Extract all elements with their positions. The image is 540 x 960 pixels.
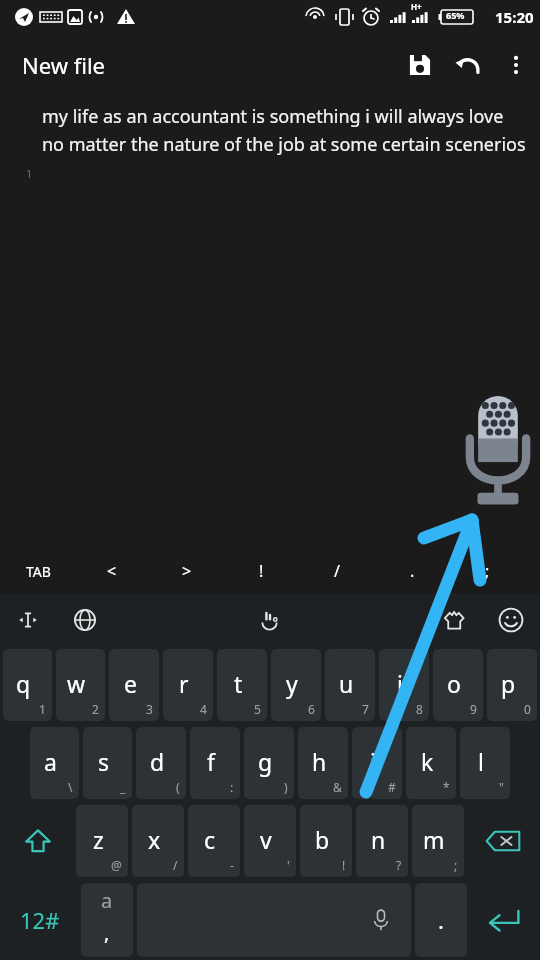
staticText: v [260,824,272,855]
button[interactable]: l [460,727,510,799]
button[interactable]: More options [492,41,540,89]
button[interactable]: m [412,805,464,877]
staticText: h [312,746,327,777]
staticText: 1 [39,701,46,717]
staticText: : [230,779,234,795]
staticText: ; [485,560,490,582]
staticText: New file [22,50,106,80]
staticText: . [438,905,444,935]
staticText: my life as an accountant is something i … [42,104,528,156]
staticText: g [258,746,273,777]
staticText: ! [342,857,346,873]
staticText: . [410,560,415,582]
staticText: \ [68,779,73,795]
button[interactable]: b [300,805,352,877]
staticText: " [499,779,504,795]
button[interactable]: 12# [1,883,79,957]
button[interactable]: o [433,649,483,721]
staticText: f [207,746,215,777]
button[interactable]: q [3,649,52,721]
staticText: 3 [146,701,153,717]
button[interactable]: v [244,805,296,877]
staticText: 9 [470,701,477,717]
button[interactable]: s [83,727,132,799]
button[interactable]: Save [396,41,444,89]
staticText: i [397,668,403,699]
staticText: w [67,668,86,699]
staticText: ' [287,857,290,873]
button[interactable]: i [379,649,429,721]
staticText: # [388,779,396,795]
staticText: q [16,668,31,699]
button[interactable]: u [325,649,375,721]
staticText: < [107,560,117,582]
staticText: 65% [446,9,465,21]
staticText: 12# [20,905,60,935]
button[interactable]: Shift [1,805,74,877]
staticText: y [286,668,298,699]
staticText: ( [176,779,180,795]
button[interactable]: f [190,727,240,799]
button[interactable]: z [76,805,128,877]
button[interactable]: Change language [63,594,107,646]
staticText: 8 [416,701,423,717]
button[interactable]: d [136,727,186,799]
button[interactable]: r [163,649,213,721]
button[interactable]: Space [137,883,411,957]
button[interactable]: / [311,548,363,594]
button[interactable]: ; [461,548,513,594]
button[interactable]: h [298,727,348,799]
button[interactable]: p [487,649,537,721]
button[interactable]: Backspace [466,805,539,877]
staticText: p [501,668,516,699]
button[interactable]: Voice typing [248,594,292,646]
staticText: k [421,746,434,777]
staticText: z [93,824,104,855]
staticText: s [98,746,110,777]
button[interactable]: > [161,548,213,594]
button[interactable]: a [30,727,79,799]
staticText: 15:20 [495,7,534,27]
button[interactable]: Theme [432,594,476,646]
staticText: c [204,824,216,855]
button[interactable]: Undo [444,41,492,89]
button[interactable]: TAB [12,548,64,594]
button[interactable]: . [415,883,467,957]
staticText: r [179,668,189,699]
staticText: ) [284,779,288,795]
staticText: TAB [26,562,51,581]
staticText: / [334,560,340,582]
staticText: * [443,779,450,795]
staticText: n [371,824,386,855]
button[interactable]: y [271,649,321,721]
button[interactable]: ! [235,548,287,594]
button[interactable]: < [86,548,138,594]
button[interactable]: g [244,727,294,799]
button[interactable]: j [352,727,402,799]
button[interactable]: Emoji [488,594,534,646]
button[interactable]: x [132,805,184,877]
button[interactable]: a [81,883,133,957]
staticText: H+ [411,1,422,12]
staticText: l [478,746,484,777]
staticText: b [315,824,330,855]
staticText: a [101,887,113,914]
staticText: - [230,857,234,873]
staticText: d [150,746,165,777]
staticText: e [124,668,137,699]
staticText: ; [454,857,458,873]
button[interactable]: w [56,649,105,721]
button[interactable]: . [386,548,438,594]
staticText: 0 [524,701,531,717]
staticText: 1 [26,166,33,181]
staticText: 4 [200,701,207,717]
button[interactable]: k [406,727,456,799]
staticText: > [182,560,192,582]
button[interactable]: e [109,649,159,721]
button[interactable]: c [188,805,240,877]
button[interactable]: Enter [469,883,539,957]
staticText: 6 [308,701,315,717]
button[interactable]: t [217,649,267,721]
button[interactable]: n [356,805,408,877]
button[interactable]: Move cursor [6,594,50,646]
